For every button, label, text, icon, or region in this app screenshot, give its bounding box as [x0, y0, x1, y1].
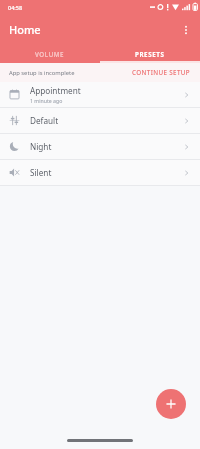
staticText: Night: [30, 141, 52, 152]
button[interactable]: Night: [0, 134, 200, 159]
button[interactable]: VOLUME: [0, 45, 100, 63]
staticText: Default: [30, 115, 59, 126]
staticText: Home: [9, 22, 41, 37]
button[interactable]: Appointment: [0, 82, 200, 107]
staticText: PRESETS: [135, 50, 165, 58]
staticText: Silent: [30, 167, 52, 178]
button[interactable]: Default: [0, 108, 200, 133]
button[interactable]: More options: [176, 20, 196, 40]
staticText: CONTINUE SETUP: [132, 68, 191, 77]
button[interactable]: PRESETS: [100, 45, 200, 63]
button[interactable]: Silent: [0, 160, 200, 185]
button[interactable]: Add preset: [156, 389, 186, 419]
staticText: VOLUME: [35, 50, 65, 58]
staticText: 1 minute ago: [30, 97, 63, 104]
button[interactable]: CONTINUE SETUP: [128, 65, 195, 80]
staticText: 04:58: [8, 4, 23, 11]
staticText: App setup is incomplete: [9, 69, 75, 77]
staticText: Appointment: [30, 85, 81, 96]
